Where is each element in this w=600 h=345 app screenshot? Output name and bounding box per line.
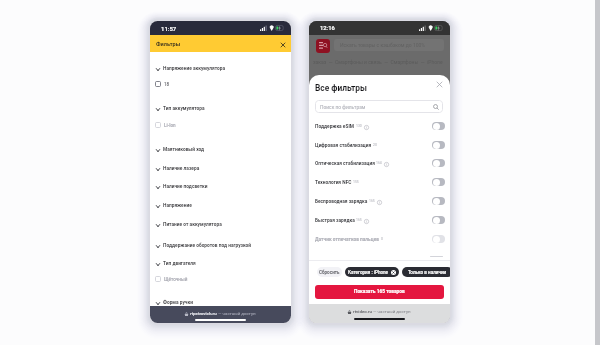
button[interactable]: Catalog [316, 39, 330, 53]
staticText: Сбросить [319, 270, 340, 275]
staticText: заказ — Смартфоны и связь — Смартфоны — … [313, 59, 443, 65]
button[interactable]: Датчик отпечатков пальцев [309, 232, 450, 248]
button[interactable]: Технология NFC [309, 175, 450, 191]
button[interactable]: Напряжение аккумулятора [150, 61, 291, 77]
staticText: Показать 165 товаров [354, 289, 405, 295]
button[interactable]: Тип двигателя [150, 256, 291, 272]
staticText: Быстрая зарядка [315, 218, 355, 224]
staticText: 165 [356, 218, 362, 222]
staticText: 0 [381, 237, 383, 241]
staticText: Тип двигателя [163, 261, 196, 267]
staticText: Поддержка eSIM [315, 124, 355, 130]
staticText: 155 [353, 180, 359, 184]
staticText: 11:57 [161, 25, 177, 32]
button[interactable]: Поддержка eSIM [309, 119, 450, 135]
button[interactable]: Питание от аккумулятора [150, 217, 291, 233]
staticText: 164 [376, 161, 382, 165]
button[interactable]: 18 [150, 77, 291, 91]
staticText: Li-Ion [164, 123, 176, 128]
staticText: Цифровая стабилизация [315, 143, 372, 149]
staticText: 12:16 [320, 25, 335, 32]
staticText: Оптическая стабилизация [315, 161, 375, 167]
staticText: Фильтры [156, 41, 181, 48]
button[interactable]: Li-Ion [150, 118, 291, 132]
button[interactable]: Только в наличии [402, 267, 450, 277]
staticText: Напряжение [163, 203, 192, 209]
staticText: Напряжение аккумулятора [163, 66, 226, 72]
staticText: — частный доступ [372, 309, 411, 314]
button[interactable]: Быстрая зарядка [309, 213, 450, 229]
staticText: Только в наличии [408, 270, 447, 275]
staticText: — частный доступ [217, 311, 256, 316]
staticText: Питание от аккумулятора [163, 222, 222, 228]
staticText: Наличие подсветки [163, 184, 208, 190]
button[interactable]: Категория : iPhone [345, 267, 399, 277]
staticText: Искать товары с кэшбэком до 100% [340, 42, 425, 48]
staticText: 20 [373, 143, 377, 147]
button[interactable]: Форма ручки [150, 295, 291, 311]
button[interactable]: Наличие лазера [150, 161, 291, 177]
staticText: Поддержание оборотов под нагрузкой [163, 243, 252, 249]
button[interactable]: Close filters [277, 39, 289, 51]
button[interactable]: Напряжение [150, 198, 291, 214]
staticText: Беспроводная зарядка [315, 199, 368, 205]
staticText: Тип аккумулятора [163, 106, 205, 112]
staticText: Наличие лазера [163, 166, 200, 172]
staticText: rtpetrovich.ru [190, 311, 217, 316]
staticText: 18 [164, 82, 170, 87]
staticText: Категория : iPhone [348, 270, 389, 275]
button[interactable]: Оптическая стабилизация [309, 156, 450, 172]
staticText: Все фильтры [315, 83, 368, 93]
button[interactable]: Close sheet [433, 78, 445, 90]
staticText: Технология NFC [315, 180, 352, 186]
staticText: Датчик отпечатков пальцев [315, 237, 380, 243]
button[interactable]: Цифровая стабилизация [309, 138, 450, 154]
button[interactable]: Маятниковый ход [150, 142, 291, 158]
button[interactable]: Щёточный [150, 272, 291, 286]
button[interactable]: Поиск по фильтрам [315, 100, 443, 113]
button[interactable]: Поддержание оборотов под нагрузкой [150, 238, 291, 254]
button[interactable]: Сбросить [317, 267, 342, 277]
staticText: Щёточный [164, 277, 188, 282]
button[interactable]: Наличие подсветки [150, 179, 291, 195]
staticText: 130 [356, 124, 362, 128]
staticText: rtvideo.ru [353, 309, 372, 314]
staticText: Форма ручки [163, 300, 193, 306]
button[interactable]: Искать товары с кэшбэком до 100% [334, 39, 444, 51]
staticText: Поиск по фильтрам [320, 104, 366, 110]
button[interactable]: Показать 165 товаров [315, 285, 444, 299]
staticText: Маятниковый ход [163, 147, 205, 153]
staticText: 165 [369, 199, 375, 203]
button[interactable]: Тип аккумулятора [150, 101, 291, 117]
button[interactable]: Беспроводная зарядка [309, 194, 450, 210]
